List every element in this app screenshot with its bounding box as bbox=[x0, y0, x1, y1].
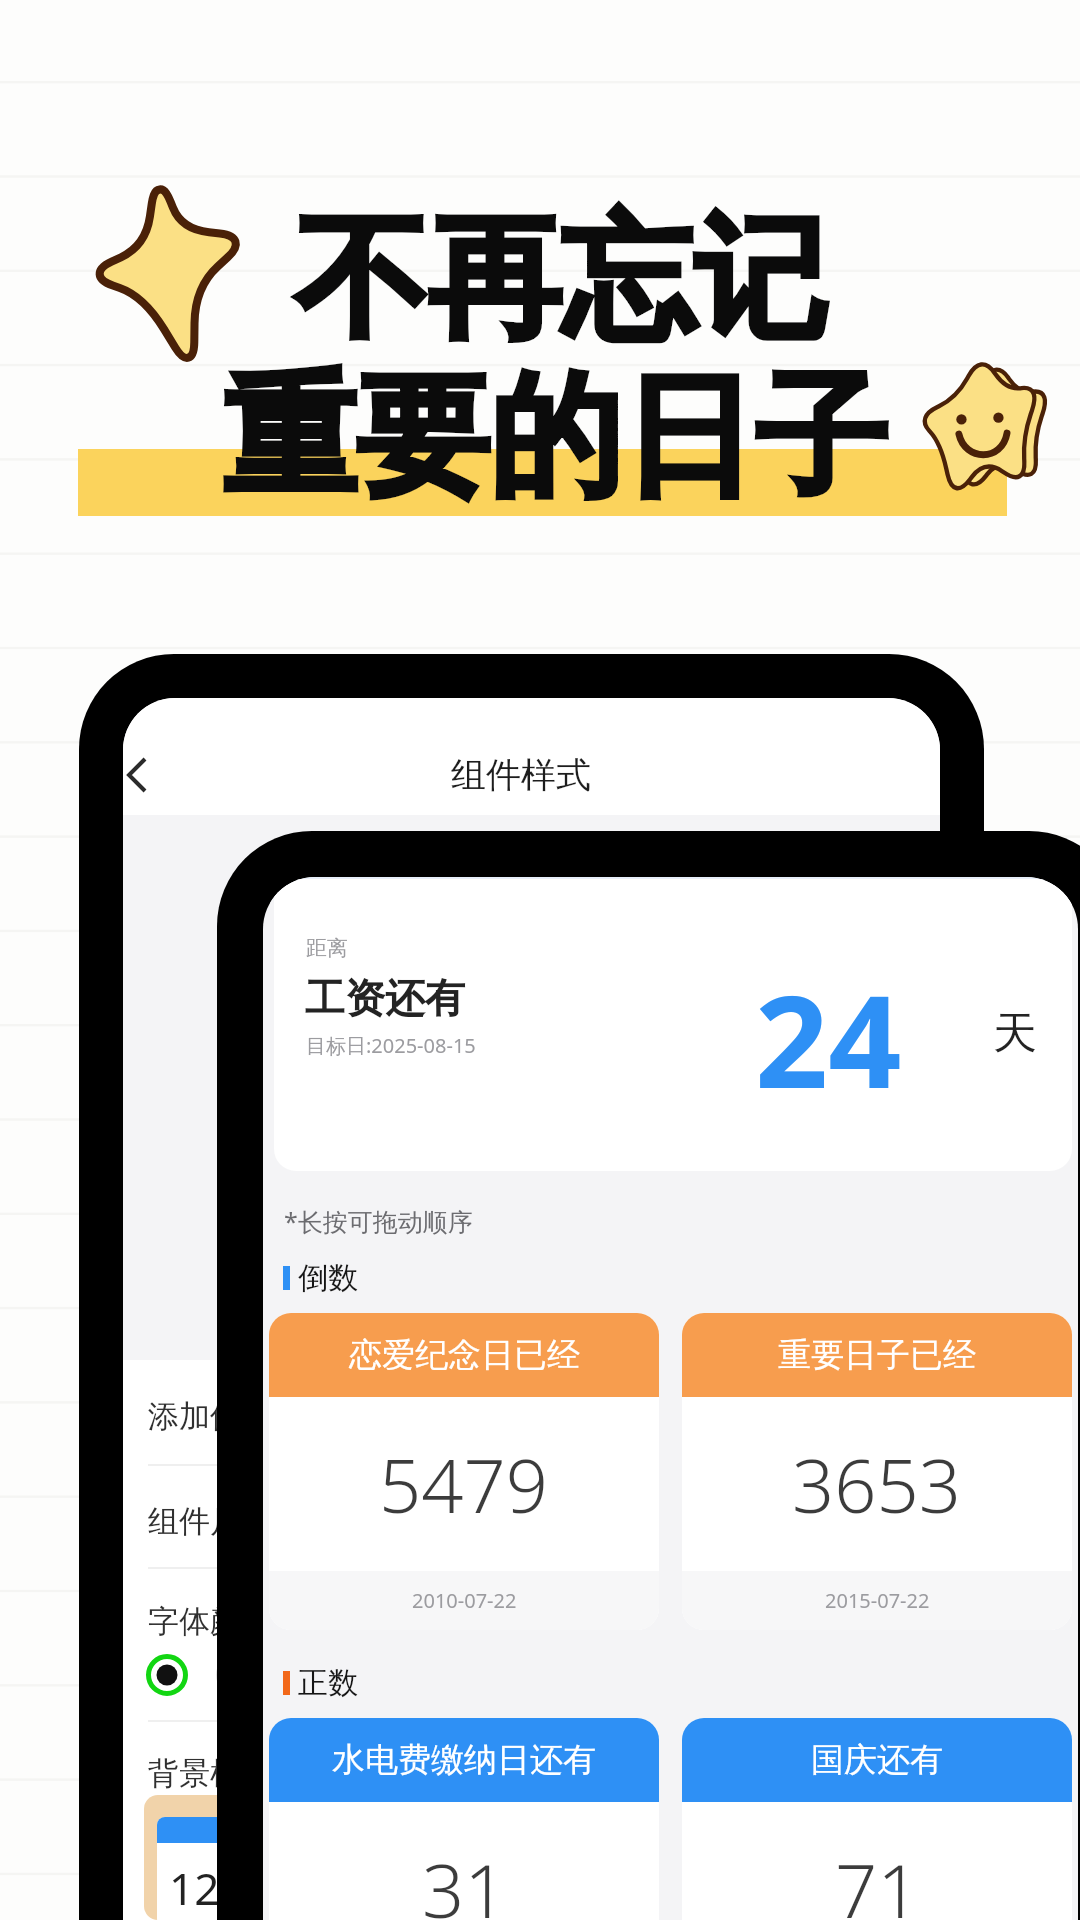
staticText: 目标日:2025-08-15 bbox=[306, 1032, 476, 1059]
staticText: 背景样式 bbox=[148, 1754, 272, 1793]
button[interactable]: 重要日子已经 bbox=[682, 1313, 1072, 1630]
staticText: 24 bbox=[755, 951, 902, 1125]
staticText: *长按可拖动顺序 bbox=[284, 1204, 473, 1238]
staticText: 重要的日子 bbox=[223, 354, 888, 522]
button[interactable]: 水电费缴纳日还有 bbox=[269, 1718, 659, 1920]
staticText: 重要日子已经 bbox=[778, 1334, 976, 1376]
button[interactable]: 国庆还有 bbox=[682, 1718, 1072, 1920]
staticText: 水电费缴纳日还有 bbox=[332, 1739, 596, 1781]
staticText: 恋爱纪念日已经 bbox=[349, 1334, 580, 1376]
staticText: 正数 bbox=[298, 1664, 358, 1702]
staticText: 组件样式 bbox=[451, 753, 591, 797]
button[interactable]: 背景样式 bbox=[123, 1746, 940, 1796]
staticText: 2015-07-22 bbox=[825, 1587, 930, 1614]
staticText: 71 bbox=[835, 1839, 920, 1920]
button[interactable]: 组件尺寸 bbox=[123, 1494, 940, 1544]
staticText: 31 bbox=[422, 1839, 507, 1920]
button[interactable]: 恋爱纪念日已经 bbox=[269, 1313, 659, 1630]
staticText: 组件尺寸 bbox=[148, 1502, 272, 1541]
staticText: 字体颜色 bbox=[148, 1602, 272, 1641]
button[interactable]: Font colour swatches bbox=[148, 1656, 318, 1698]
staticText: 天 bbox=[993, 1006, 1037, 1061]
button[interactable]: 添加倒计时 bbox=[123, 1389, 940, 1439]
staticText: 距离 bbox=[306, 935, 348, 961]
button[interactable]: 字体颜色 bbox=[123, 1594, 940, 1644]
staticText: 倒数 bbox=[298, 1259, 358, 1297]
staticText: 5479 bbox=[379, 1434, 549, 1535]
staticText: 国庆还有 bbox=[811, 1739, 943, 1781]
button[interactable]: 距离 bbox=[274, 879, 1072, 1171]
button[interactable]: Background style preview bbox=[144, 1795, 240, 1920]
staticText: 不再忘记 bbox=[295, 196, 827, 364]
staticText: 添加倒计时 bbox=[148, 1397, 303, 1436]
staticText: 工资还有 bbox=[305, 973, 465, 1023]
staticText: 2010-07-22 bbox=[412, 1587, 517, 1614]
staticText: 3653 bbox=[792, 1434, 962, 1535]
staticText: 12 bbox=[169, 1858, 220, 1918]
button[interactable]: Back bbox=[123, 755, 159, 795]
